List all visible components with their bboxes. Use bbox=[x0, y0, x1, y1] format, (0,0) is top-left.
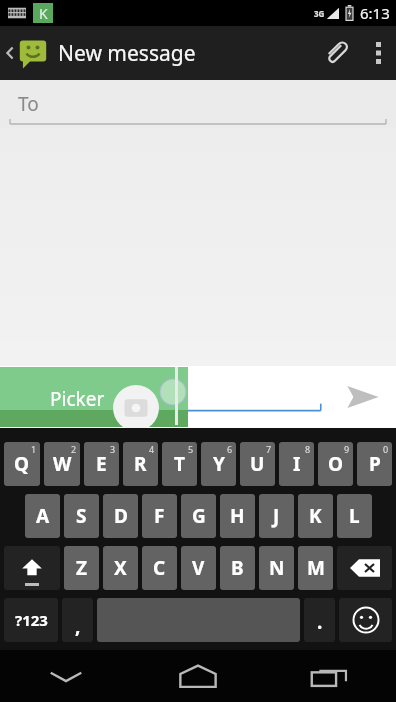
staticText: D bbox=[114, 503, 128, 529]
button[interactable]: Attach bbox=[312, 26, 360, 80]
staticText: R bbox=[134, 451, 147, 477]
button[interactable]: K bbox=[298, 494, 333, 538]
staticText: P bbox=[369, 451, 381, 477]
button[interactable]: Send bbox=[330, 366, 396, 428]
button[interactable]: More options bbox=[360, 26, 396, 80]
staticText: Q bbox=[14, 451, 30, 477]
staticText: New message bbox=[58, 39, 196, 68]
button[interactable]: Picker bbox=[0, 367, 188, 427]
staticText: O bbox=[328, 451, 344, 477]
button[interactable]: O bbox=[318, 442, 353, 486]
staticText: 1 bbox=[31, 443, 37, 455]
button[interactable]: U bbox=[240, 442, 275, 486]
button[interactable]: Navigate up bbox=[0, 38, 50, 68]
button[interactable]: . bbox=[304, 598, 335, 642]
staticText: Y bbox=[213, 451, 225, 477]
button[interactable]: I bbox=[279, 442, 314, 486]
button[interactable]: Y bbox=[201, 442, 236, 486]
button[interactable]: A bbox=[25, 494, 60, 538]
button[interactable]: F bbox=[142, 494, 177, 538]
button[interactable]: Q bbox=[4, 442, 40, 486]
staticText: K bbox=[309, 503, 322, 529]
staticText: 2 bbox=[71, 443, 77, 455]
staticText: ?123 bbox=[15, 610, 48, 630]
button[interactable]: Delete bbox=[337, 546, 392, 590]
staticText: W bbox=[53, 451, 72, 477]
button[interactable]: C bbox=[142, 546, 177, 590]
button[interactable]: B bbox=[220, 546, 255, 590]
staticText: L bbox=[349, 503, 360, 529]
button[interactable]: H bbox=[220, 494, 255, 538]
staticText: A bbox=[36, 503, 50, 529]
staticText: Type message bbox=[22, 378, 143, 403]
staticText: To bbox=[18, 91, 39, 117]
button[interactable]: N bbox=[259, 546, 294, 590]
button[interactable]: L bbox=[337, 494, 372, 538]
staticText: . bbox=[317, 609, 323, 635]
button[interactable]: To bbox=[0, 80, 396, 128]
button[interactable]: , bbox=[62, 598, 93, 642]
button[interactable]: T bbox=[162, 442, 197, 486]
button[interactable]: R bbox=[123, 442, 158, 486]
staticText: V bbox=[192, 555, 205, 581]
staticText: Picker bbox=[50, 386, 105, 412]
staticText: N bbox=[269, 555, 285, 581]
button[interactable]: ?123 bbox=[4, 598, 58, 642]
button[interactable]: Hide keyboard bbox=[0, 650, 132, 702]
staticText: 0 bbox=[383, 443, 389, 455]
staticText: , bbox=[75, 613, 81, 639]
staticText: 3 bbox=[110, 443, 116, 455]
staticText: F bbox=[154, 503, 165, 529]
staticText: 7 bbox=[266, 443, 272, 455]
button[interactable]: X bbox=[103, 546, 138, 590]
button[interactable]: D bbox=[103, 494, 138, 538]
staticText: 5 bbox=[188, 443, 194, 455]
staticText: 8 bbox=[305, 443, 311, 455]
staticText: 4 bbox=[149, 443, 155, 455]
staticText: 6:13 bbox=[360, 3, 390, 23]
button[interactable]: V bbox=[181, 546, 216, 590]
staticText: M bbox=[307, 555, 325, 581]
staticText: T bbox=[174, 451, 185, 477]
staticText: 3G bbox=[314, 8, 325, 19]
staticText: I bbox=[293, 451, 301, 477]
staticText: C bbox=[153, 555, 166, 581]
staticText: B bbox=[231, 555, 244, 581]
staticText: S bbox=[76, 503, 87, 529]
button[interactable]: S bbox=[64, 494, 99, 538]
button[interactable]: Z bbox=[64, 546, 99, 590]
button[interactable]: W bbox=[44, 442, 80, 486]
button[interactable]: M bbox=[298, 546, 333, 590]
staticText: J bbox=[273, 503, 280, 529]
staticText: K bbox=[39, 4, 48, 23]
staticText: E bbox=[96, 451, 107, 477]
button[interactable]: Home bbox=[132, 650, 264, 702]
staticText: 6 bbox=[227, 443, 233, 455]
staticText: G bbox=[192, 503, 206, 529]
staticText: U bbox=[250, 451, 265, 477]
staticText: Z bbox=[76, 555, 88, 581]
button[interactable]: E bbox=[84, 442, 119, 486]
staticText: X bbox=[114, 555, 127, 581]
button[interactable]: Emoji bbox=[339, 598, 392, 642]
button[interactable]: Shift bbox=[4, 546, 60, 590]
staticText: 9 bbox=[344, 443, 350, 455]
button[interactable]: Recent apps bbox=[264, 650, 396, 702]
button[interactable]: P bbox=[357, 442, 392, 486]
staticText: H bbox=[230, 503, 245, 529]
button[interactable]: J bbox=[259, 494, 294, 538]
button[interactable]: G bbox=[181, 494, 216, 538]
